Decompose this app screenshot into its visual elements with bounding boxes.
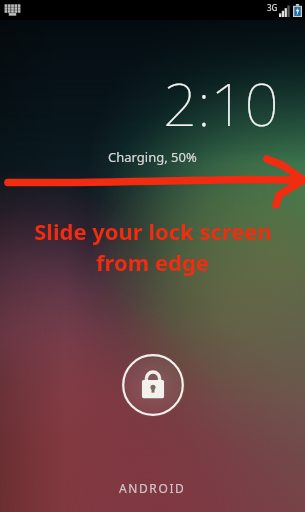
staticText: 2:10 [163, 62, 279, 144]
staticText: ANDROID [119, 480, 186, 496]
button[interactable]: Unlock [121, 353, 185, 417]
staticText: Charging, 50% [108, 148, 197, 166]
staticText: Slide your lock screen [34, 216, 272, 246]
staticText: 3G [267, 2, 278, 13]
staticText: from edge [96, 247, 209, 277]
